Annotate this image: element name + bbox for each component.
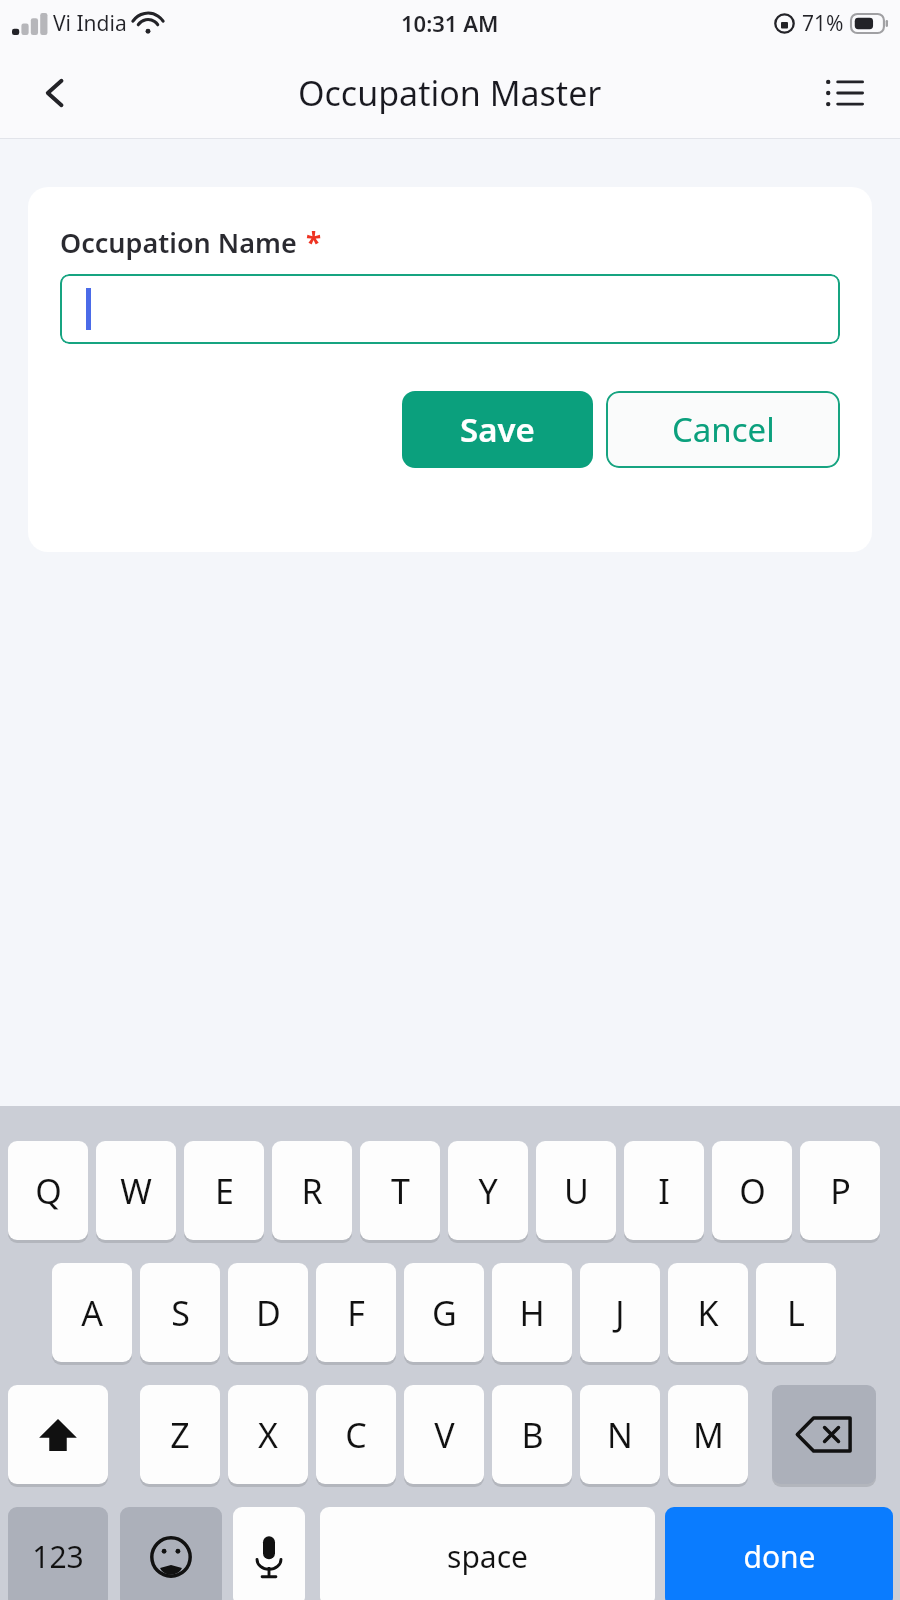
staticText: Z [170, 1412, 190, 1458]
button[interactable]: Back [26, 64, 84, 122]
button[interactable]: I [624, 1141, 704, 1240]
staticText: V [434, 1412, 455, 1458]
button[interactable]: P [800, 1141, 880, 1240]
staticText: U [564, 1168, 589, 1214]
staticText: F [347, 1290, 365, 1336]
staticText: Occupation Master [298, 70, 602, 116]
staticText: N [607, 1412, 633, 1458]
staticText: 10:31 AM [401, 8, 499, 38]
staticText: M [693, 1412, 724, 1458]
button[interactable]: N [580, 1385, 660, 1484]
button[interactable]: W [96, 1141, 176, 1240]
button[interactable]: G [404, 1263, 484, 1362]
staticText: W [120, 1168, 152, 1214]
staticText: D [256, 1290, 281, 1336]
staticText: Save [460, 407, 535, 452]
staticText: space [447, 1536, 528, 1577]
staticText: S [171, 1290, 190, 1336]
staticText: Vi India [53, 9, 127, 38]
staticText: O [739, 1168, 766, 1214]
button[interactable]: X [228, 1385, 308, 1484]
button[interactable]: D [228, 1263, 308, 1362]
button[interactable]: Menu [816, 64, 874, 122]
button[interactable]: R [272, 1141, 352, 1240]
button[interactable]: V [404, 1385, 484, 1484]
staticText: R [301, 1168, 323, 1214]
button[interactable]: E [184, 1141, 264, 1240]
button[interactable]: U [536, 1141, 616, 1240]
button[interactable]: Shift [8, 1385, 108, 1484]
button[interactable]: M [668, 1385, 748, 1484]
button[interactable] [60, 274, 840, 344]
staticText: Y [478, 1168, 498, 1214]
staticText: 71% [802, 9, 844, 38]
button[interactable]: Z [140, 1385, 220, 1484]
button[interactable]: F [316, 1263, 396, 1362]
staticText: Occupation Name [60, 224, 297, 261]
staticText: J [615, 1290, 625, 1336]
staticText: C [345, 1412, 367, 1458]
button[interactable]: Save [402, 391, 593, 468]
staticText: B [521, 1412, 544, 1458]
staticText: H [519, 1290, 545, 1336]
button[interactable]: O [712, 1141, 792, 1240]
button[interactable]: K [668, 1263, 748, 1362]
button[interactable]: space [320, 1507, 655, 1600]
staticText: 123 [32, 1536, 84, 1577]
staticText: G [432, 1290, 457, 1336]
button[interactable]: done [665, 1507, 893, 1600]
button[interactable]: Q [8, 1141, 88, 1240]
staticText: Q [35, 1168, 62, 1214]
staticText: Cancel [672, 407, 775, 452]
staticText: E [215, 1168, 234, 1214]
button[interactable]: 123 [8, 1507, 108, 1600]
button[interactable]: C [316, 1385, 396, 1484]
button[interactable]: S [140, 1263, 220, 1362]
button[interactable]: Emoji [120, 1507, 222, 1600]
staticText: A [81, 1290, 103, 1336]
staticText: K [697, 1290, 719, 1336]
staticText: L [787, 1290, 805, 1336]
staticText: X [258, 1412, 278, 1458]
button[interactable]: T [360, 1141, 440, 1240]
button[interactable]: Backspace [772, 1385, 876, 1484]
button[interactable]: B [492, 1385, 572, 1484]
staticText: I [658, 1168, 670, 1214]
staticText: * [306, 223, 322, 261]
button[interactable]: J [580, 1263, 660, 1362]
button[interactable]: L [756, 1263, 836, 1362]
button[interactable]: Y [448, 1141, 528, 1240]
staticText: P [830, 1168, 851, 1214]
staticText: T [391, 1168, 410, 1214]
button[interactable]: H [492, 1263, 572, 1362]
button[interactable]: Cancel [606, 391, 840, 468]
button[interactable]: Voice input [233, 1507, 305, 1600]
staticText: done [743, 1536, 816, 1577]
button[interactable]: A [52, 1263, 132, 1362]
